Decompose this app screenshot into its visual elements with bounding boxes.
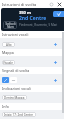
button[interactable]: Chiudi [56, 1, 62, 7]
staticText: Istruzioni di svolta [2, 2, 37, 7]
staticText: Dentro Mappa [4, 96, 25, 100]
button[interactable]: Inizio 17: 2nd Centre [2, 112, 36, 117]
staticText: Inizio 17: 2nd Centre [4, 113, 34, 117]
button[interactable]: Aggiungi [52, 59, 58, 65]
staticText: Alto [6, 43, 12, 47]
staticText: Info [2, 104, 9, 109]
staticText: Indicazioni vocali [2, 86, 31, 91]
button[interactable]: Aggiungi [52, 41, 58, 47]
button[interactable]: Alto [2, 42, 15, 47]
staticText: 350 m [19, 10, 31, 15]
button[interactable]: Modalita lista [10, 77, 17, 83]
staticText: Visuale [3, 61, 14, 65]
staticText: Piedmont, Rovereto, 5 Mari [19, 23, 58, 27]
staticText: Segnali di svolta [2, 68, 30, 73]
staticText: Istruzioni vocali [2, 32, 29, 37]
button[interactable]: Scelta di Muro [3, 21, 17, 29]
button[interactable]: Opzioni [48, 1, 54, 7]
staticText: Mappa [2, 50, 14, 55]
button[interactable]: Visuale [2, 60, 15, 65]
button[interactable]: Modalita mappa [2, 77, 9, 83]
button[interactable]: Naviga [53, 11, 64, 17]
button[interactable]: Aggiungi [52, 77, 58, 83]
staticText: 2nd Centre [19, 15, 47, 22]
button[interactable]: Dentro Mappa [2, 95, 27, 100]
staticText: Scelta di Muro [5, 22, 16, 28]
